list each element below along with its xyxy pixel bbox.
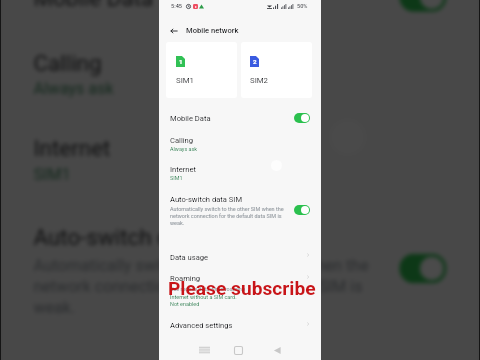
button[interactable]: Mobile Data xyxy=(1,0,479,30)
staticText: Mobile Data xyxy=(170,114,211,123)
staticText: Not enabled xyxy=(170,301,200,307)
button[interactable]: Internet xyxy=(159,160,321,186)
button[interactable]: Internet xyxy=(1,121,479,198)
staticText: network connection for the default data … xyxy=(33,277,364,295)
staticText: Internet xyxy=(170,165,197,174)
staticText: 1 xyxy=(179,58,183,65)
staticText: Always ask xyxy=(170,146,198,152)
staticText: SIM1 xyxy=(176,76,194,85)
staticText: Roaming xyxy=(170,274,201,283)
staticText: SIM1 xyxy=(170,175,183,181)
staticText: weak. xyxy=(170,220,185,226)
button[interactable]: Recents xyxy=(197,344,211,356)
staticText: Calling xyxy=(170,136,194,145)
staticText: 2 xyxy=(253,58,257,65)
button[interactable]: Calling xyxy=(159,131,321,157)
staticText: SIM2 xyxy=(250,76,268,85)
button[interactable]: Back xyxy=(167,24,181,38)
staticText: Internet without a SIM card. xyxy=(170,294,237,300)
staticText: Auto-switch data SIM xyxy=(170,195,243,204)
button[interactable]: Mobile Data xyxy=(159,106,321,129)
button[interactable]: Toggle xyxy=(294,205,310,215)
button[interactable]: Advanced settings xyxy=(159,318,321,340)
button[interactable]: Toggle xyxy=(294,113,310,123)
staticText: Automatically switch to the other SIM wh… xyxy=(33,257,370,274)
staticText: Always ask xyxy=(33,80,116,97)
button[interactable]: Auto-switch data SIM xyxy=(159,191,321,229)
staticText: Automatically switch to the other SIM wh… xyxy=(170,206,284,212)
staticText: SIM1 xyxy=(33,165,72,183)
button[interactable]: 1 xyxy=(166,42,237,98)
staticText: weak. xyxy=(33,298,78,316)
staticText: Mobile network xyxy=(186,26,239,35)
button[interactable]: 2 xyxy=(241,42,312,98)
button[interactable]: Auto-switch data SIM xyxy=(1,212,479,325)
button[interactable]: Calling xyxy=(1,35,479,112)
button[interactable]: Toggle xyxy=(399,254,446,283)
button[interactable]: Toggle xyxy=(399,0,446,12)
button[interactable]: Roaming xyxy=(159,271,321,315)
staticText: Mobile Data xyxy=(33,0,154,12)
button[interactable]: Data usage xyxy=(159,248,321,270)
staticText: Data usage xyxy=(170,253,209,262)
staticText: Please subscribe xyxy=(168,277,316,300)
staticText: Auto-switch data SIM xyxy=(33,224,249,251)
button[interactable]: Back xyxy=(270,344,284,356)
staticText: 5:45 xyxy=(171,3,183,10)
staticText: Advanced settings xyxy=(170,321,233,330)
staticText: 50% xyxy=(297,3,308,10)
staticText: Use mobile data when roaming xyxy=(170,286,245,292)
button[interactable]: Home xyxy=(231,344,245,356)
staticText: Calling xyxy=(33,50,104,77)
staticText: network connection for the default data … xyxy=(170,213,282,219)
staticText: Internet xyxy=(33,136,113,162)
